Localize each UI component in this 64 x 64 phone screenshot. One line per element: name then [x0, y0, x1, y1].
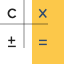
- button[interactable]: Plus minus: [0, 32, 32, 64]
- button[interactable]: Equals: [32, 32, 64, 64]
- button[interactable]: Clear: [0, 0, 32, 32]
- button[interactable]: Multiply: [32, 0, 64, 32]
